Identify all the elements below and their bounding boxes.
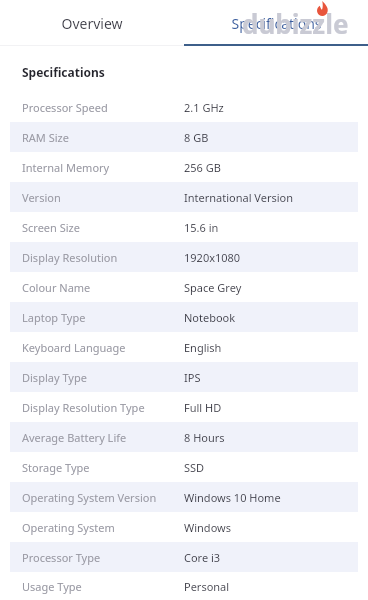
staticText: Average Battery Life [22, 430, 127, 445]
button[interactable]: Screen Size [10, 212, 358, 242]
staticText: Specifications [231, 14, 322, 33]
staticText: Operating System [22, 520, 115, 535]
staticText: Core i3 [184, 550, 221, 565]
button[interactable]: Colour Name [10, 272, 358, 302]
staticText: Storage Type [22, 460, 90, 475]
button[interactable]: Overview [0, 0, 184, 46]
button[interactable]: Version [10, 182, 358, 212]
staticText: Display Resolution Type [22, 400, 145, 415]
button[interactable]: Specifications [184, 0, 368, 46]
staticText: 8 Hours [184, 430, 225, 445]
button[interactable]: Display Resolution Type [10, 392, 358, 422]
button[interactable]: Operating System Version [10, 482, 358, 512]
staticText: Processor Speed [22, 100, 108, 115]
staticText: Laptop Type [22, 310, 86, 325]
staticText: Colour Name [22, 280, 91, 295]
staticText: Internal Memory [22, 160, 110, 175]
other: Flame logo [315, 1, 329, 17]
staticText: dubizzle [242, 6, 349, 41]
staticText: Notebook [184, 310, 236, 325]
staticText: 1920x1080 [184, 250, 241, 265]
staticText: English [184, 340, 222, 355]
button[interactable]: Display Type [10, 362, 358, 392]
staticText: 256 GB [184, 160, 221, 175]
button[interactable]: Usage Type [10, 572, 358, 600]
staticText: Processor Type [22, 550, 101, 565]
staticText: Keyboard Language [22, 340, 126, 355]
staticText: Windows 10 Home [184, 490, 281, 505]
button[interactable]: Processor Speed [10, 92, 358, 122]
staticText: Display Resolution [22, 250, 118, 265]
staticText: Windows [184, 520, 231, 535]
staticText: International Version [184, 190, 294, 205]
button[interactable]: Display Resolution [10, 242, 358, 272]
button[interactable]: RAM Size [10, 122, 358, 152]
button[interactable]: Storage Type [10, 452, 358, 482]
staticText: Screen Size [22, 220, 80, 235]
staticText: Space Grey [184, 280, 242, 295]
staticText: Display Type [22, 370, 87, 385]
button[interactable]: Average Battery Life [10, 422, 358, 452]
staticText: Personal [184, 579, 230, 594]
staticText: RAM Size [22, 130, 69, 145]
staticText: 2.1 GHz [184, 100, 224, 115]
staticText: IPS [184, 370, 201, 385]
staticText: SSD [184, 460, 205, 475]
staticText: Usage Type [22, 579, 82, 594]
staticText: Specifications [22, 64, 105, 80]
button[interactable]: Internal Memory [10, 152, 358, 182]
staticText: 8 GB [184, 130, 209, 145]
button[interactable]: Operating System [10, 512, 358, 542]
staticText: Version [22, 190, 61, 205]
button[interactable]: Keyboard Language [10, 332, 358, 362]
staticText: Full HD [184, 400, 222, 415]
staticText: Overview [61, 14, 123, 33]
staticText: 15.6 in [184, 220, 219, 235]
button[interactable]: Processor Type [10, 542, 358, 572]
staticText: Operating System Version [22, 490, 157, 505]
button[interactable]: Laptop Type [10, 302, 358, 332]
